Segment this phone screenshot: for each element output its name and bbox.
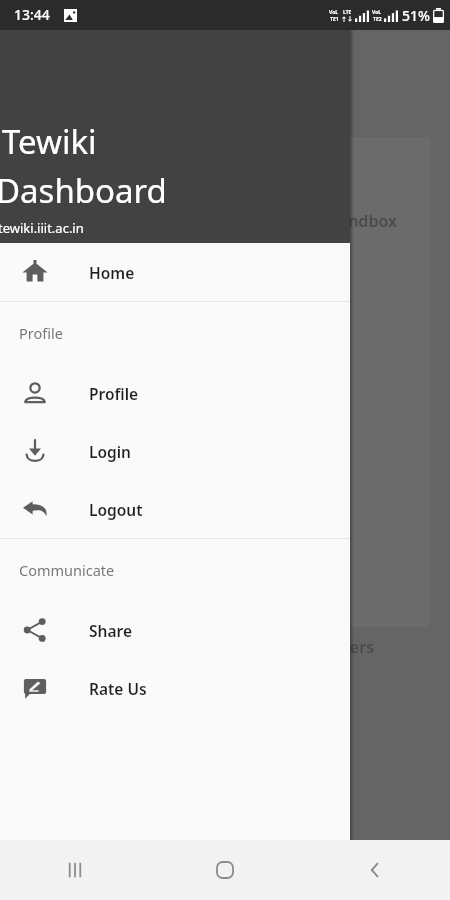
staticText: Held — [330, 422, 367, 444]
button[interactable]: Home — [150, 840, 300, 900]
button[interactable]: Share — [0, 601, 350, 659]
staticText: Rate Us — [89, 678, 147, 699]
staticText: Logout — [89, 499, 143, 520]
staticText: TE2 — [373, 16, 382, 23]
staticText: tewiki.iiit.ac.in — [0, 219, 84, 237]
staticText: VoL — [372, 9, 382, 16]
staticText: Communicate — [19, 560, 115, 580]
button[interactable]: Logout — [0, 480, 350, 538]
staticText: LTE — [343, 9, 352, 16]
staticText: Profile — [19, 323, 63, 343]
staticText: VoL — [329, 9, 339, 16]
staticText: 51% — [402, 6, 430, 25]
staticText: Home — [89, 262, 135, 283]
staticText: Sandbox — [330, 210, 397, 232]
button[interactable]: Home — [0, 243, 350, 301]
staticText: Share — [89, 620, 132, 641]
staticText: Users — [330, 636, 375, 658]
staticText: Profile — [89, 383, 139, 404]
button[interactable]: Back — [300, 840, 450, 900]
staticText: TE1 — [330, 16, 339, 23]
button[interactable]: Profile — [0, 364, 350, 422]
button[interactable]: Login — [0, 422, 350, 480]
staticText: Login — [89, 441, 132, 462]
staticText: 13:44 — [14, 5, 50, 24]
staticText: Tewiki — [2, 119, 97, 164]
button[interactable]: Rate Us — [0, 659, 350, 717]
staticText: Dashboard — [0, 168, 167, 213]
button[interactable]: Recent apps — [0, 840, 150, 900]
